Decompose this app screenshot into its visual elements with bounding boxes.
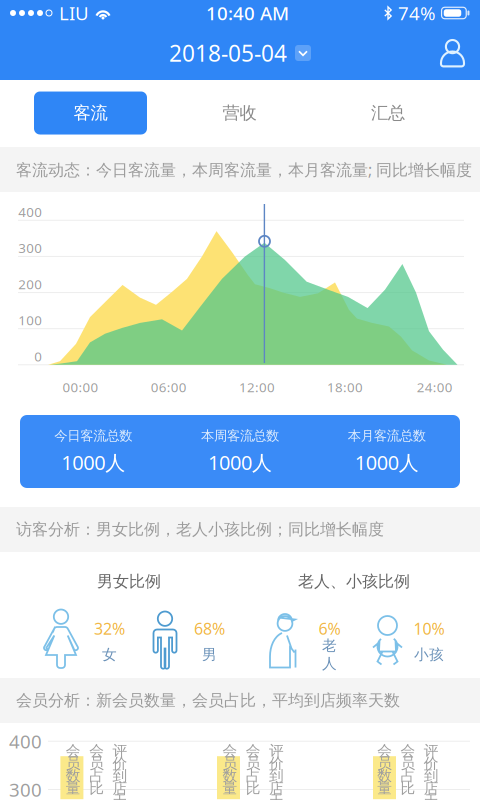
- staticText: 营收: [222, 102, 256, 124]
- staticText: 比: [246, 779, 261, 797]
- staticText: 价: [112, 754, 127, 772]
- staticText: 占: [246, 767, 261, 785]
- staticText: 100: [18, 311, 42, 329]
- staticText: 400: [18, 203, 42, 221]
- staticText: 300: [18, 239, 42, 257]
- staticText: 1000人: [208, 449, 272, 475]
- button[interactable]: Account: [427, 33, 480, 73]
- staticText: 比: [400, 779, 415, 797]
- staticText: 68%: [194, 618, 225, 639]
- button[interactable]: 营收: [191, 91, 287, 134]
- staticText: 24:00: [417, 378, 453, 396]
- staticText: 量: [222, 779, 237, 797]
- staticText: 到: [424, 767, 439, 785]
- staticText: 到: [269, 767, 284, 785]
- staticText: 今日客流总数: [54, 427, 132, 444]
- staticText: 10%: [413, 618, 444, 639]
- staticText: 200: [18, 275, 42, 293]
- staticText: 男女比例: [97, 572, 161, 591]
- staticText: 400: [9, 729, 42, 754]
- staticText: 1000人: [355, 449, 419, 475]
- staticText: 价: [424, 754, 439, 772]
- staticText: 店: [269, 779, 284, 797]
- staticText: 员: [246, 754, 261, 772]
- button[interactable]: 2018-05-04: [161, 32, 319, 74]
- staticText: 员: [66, 754, 81, 772]
- staticText: 评: [269, 742, 284, 760]
- staticText: 客流: [73, 102, 107, 124]
- staticText: 老人、小孩比例: [298, 572, 410, 591]
- staticText: 数: [222, 767, 237, 785]
- staticText: 会: [400, 742, 415, 760]
- staticText: 10:40 AM: [206, 1, 289, 25]
- staticText: 店: [424, 779, 439, 797]
- button[interactable]: 汇总: [340, 91, 436, 134]
- staticText: 男: [202, 645, 217, 663]
- staticText: 06:00: [151, 378, 187, 396]
- staticText: 汇总: [371, 102, 405, 124]
- staticText: 会: [222, 742, 237, 760]
- staticText: 74%: [398, 1, 436, 25]
- staticText: 数: [377, 767, 392, 785]
- staticText: 会: [89, 742, 104, 760]
- staticText: 32%: [94, 618, 125, 639]
- staticText: 访客分析：男女比例，老人小孩比例；同比增长幅度: [16, 520, 384, 539]
- staticText: 评: [112, 742, 127, 760]
- staticText: 量: [377, 779, 392, 797]
- staticText: 会: [377, 742, 392, 760]
- staticText: 价: [269, 754, 284, 772]
- staticText: 员: [222, 754, 237, 772]
- staticText: 18:00: [327, 378, 363, 396]
- staticText: 300: [9, 777, 42, 800]
- staticText: 天: [112, 792, 127, 800]
- staticText: 女: [102, 645, 117, 663]
- staticText: 天: [269, 792, 284, 800]
- staticText: 2018-05-04: [169, 38, 287, 68]
- staticText: 会: [246, 742, 261, 760]
- staticText: 客流动态：今日客流量，本周客流量，本月客流量; 同比增长幅度: [16, 159, 472, 180]
- staticText: 比: [89, 779, 104, 797]
- staticText: LIU: [59, 1, 89, 25]
- staticText: 员: [377, 754, 392, 772]
- staticText: 本月客流总数: [348, 427, 426, 444]
- staticText: 占: [400, 767, 415, 785]
- staticText: 员: [400, 754, 415, 772]
- staticText: 占: [89, 767, 104, 785]
- staticText: 会: [66, 742, 81, 760]
- staticText: 0: [34, 347, 42, 365]
- staticText: 本周客流总数: [201, 427, 279, 444]
- staticText: 评: [424, 742, 439, 760]
- staticText: 数: [66, 767, 81, 785]
- staticText: 小孩: [414, 645, 444, 663]
- staticText: 员: [89, 754, 104, 772]
- staticText: 老人: [322, 636, 337, 672]
- staticText: 6%: [318, 618, 340, 639]
- staticText: 量: [66, 779, 81, 797]
- staticText: 天: [424, 792, 439, 800]
- button[interactable]: 客流: [34, 91, 147, 134]
- staticText: 1000人: [61, 449, 125, 475]
- staticText: 到: [112, 767, 127, 785]
- staticText: 00:00: [63, 378, 99, 396]
- staticText: 店: [112, 779, 127, 797]
- staticText: 12:00: [239, 378, 275, 396]
- staticText: 会员分析：新会员数量，会员占比，平均到店频率天数: [16, 691, 400, 710]
